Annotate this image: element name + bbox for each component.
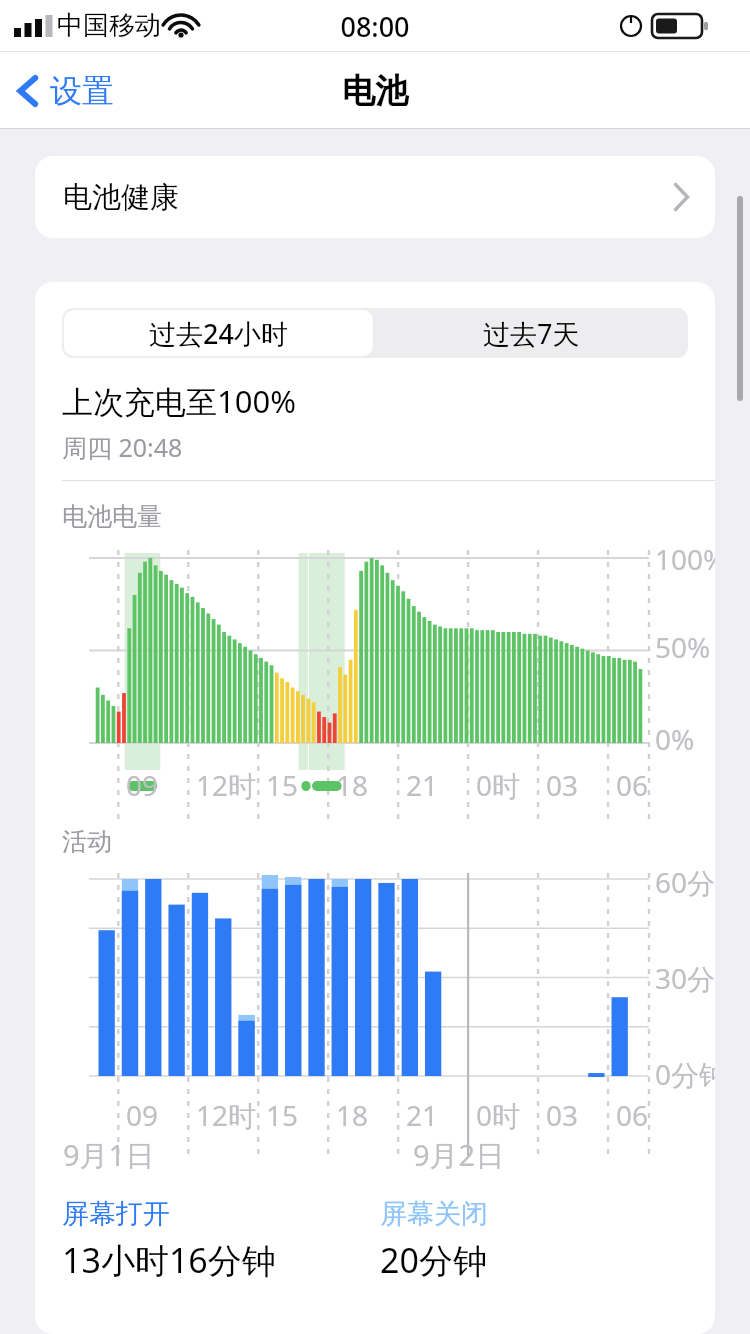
- staticText: 50%: [655, 628, 711, 666]
- staticText: 设置: [50, 71, 114, 111]
- staticText: 03: [546, 766, 579, 804]
- staticText: 18: [336, 766, 369, 804]
- staticText: 电池健康: [63, 179, 179, 216]
- staticText: 03: [546, 1096, 579, 1134]
- staticText: 中国移动: [57, 9, 161, 42]
- staticText: 13小时16分钟: [62, 1237, 276, 1283]
- staticText: 电池: [342, 70, 408, 112]
- button[interactable]: 过去7天: [375, 308, 688, 358]
- staticText: 上次充电至100%: [62, 380, 296, 422]
- other: 打开电池健康: [674, 183, 689, 211]
- staticText: 9月1日: [63, 1135, 155, 1175]
- staticText: 21: [406, 766, 439, 804]
- button[interactable]: 过去24小时: [64, 310, 373, 356]
- staticText: 12时: [196, 1096, 257, 1134]
- staticText: 活动: [62, 826, 112, 857]
- staticText: 周四 20:48: [62, 430, 183, 464]
- staticText: 100%: [655, 540, 715, 578]
- staticText: 0时: [476, 766, 521, 804]
- staticText: 0%: [655, 720, 695, 758]
- staticText: 15: [266, 766, 299, 804]
- staticText: 09: [126, 766, 159, 804]
- staticText: 15: [266, 1096, 299, 1134]
- staticText: 30分钟: [655, 959, 715, 997]
- staticText: 06: [616, 766, 649, 804]
- staticText: 60分钟: [655, 863, 715, 901]
- button[interactable]: 电池健康: [35, 156, 715, 238]
- staticText: 过去7天: [483, 315, 580, 352]
- staticText: 电池电量: [62, 501, 162, 532]
- staticText: 06: [616, 1096, 649, 1134]
- staticText: 0时: [476, 1096, 521, 1134]
- staticText: 屏幕打开: [62, 1197, 170, 1231]
- staticText: 0分钟: [655, 1055, 715, 1093]
- staticText: 08:00: [0, 8, 750, 45]
- staticText: 18: [336, 1096, 369, 1134]
- staticText: 12时: [196, 766, 257, 804]
- staticText: 20分钟: [380, 1237, 487, 1283]
- staticText: 9月2日: [413, 1135, 505, 1175]
- staticText: 09: [126, 1096, 159, 1134]
- staticText: 过去24小时: [149, 315, 288, 352]
- staticText: 屏幕关闭: [380, 1197, 488, 1231]
- button[interactable]: 设置: [0, 52, 132, 129]
- staticText: 21: [406, 1096, 439, 1134]
